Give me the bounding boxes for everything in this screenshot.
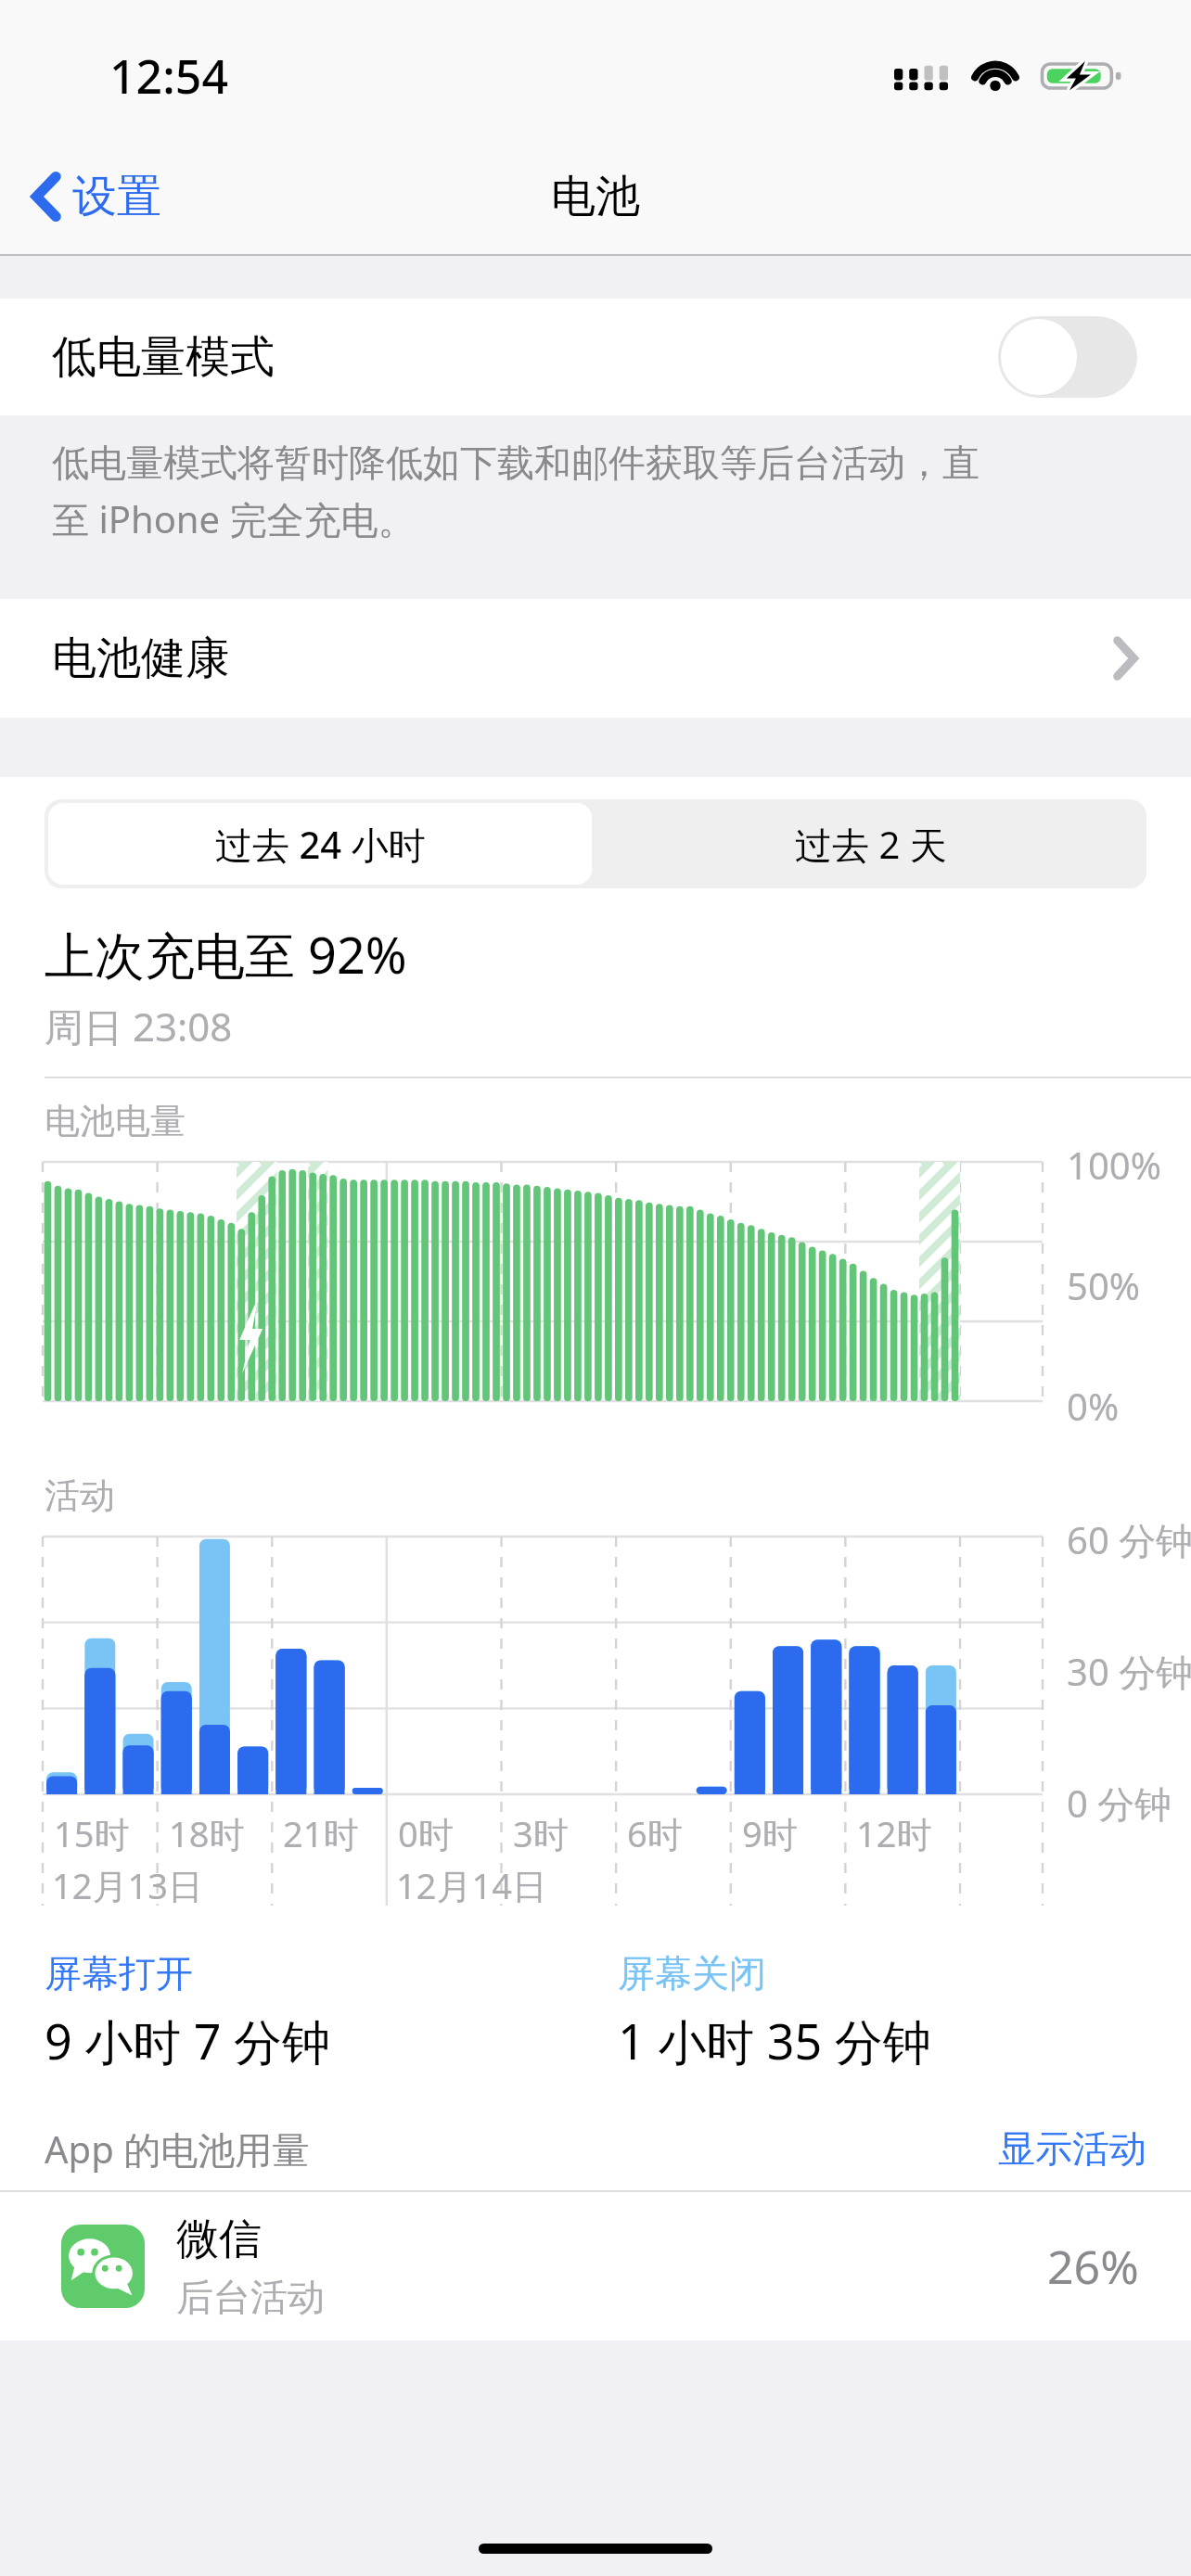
staticText: 6时 xyxy=(627,1809,683,1857)
staticText: 低电量模式将暂时降低如下载和邮件获取等后台活动，直 至 iPhone 完全充电。 xyxy=(52,440,980,544)
staticText: 周日 23:08 xyxy=(45,1000,233,1052)
staticText: 微信 xyxy=(176,2213,262,2266)
button[interactable]: 低电量模式 xyxy=(998,316,1137,398)
button[interactable]: 过去 2 天 xyxy=(595,799,1146,888)
button[interactable]: 过去 24 小时 xyxy=(48,803,592,885)
staticText: 低电量模式 xyxy=(52,329,275,385)
staticText: 屏幕打开 xyxy=(45,1950,193,1996)
button[interactable]: 显示活动 xyxy=(976,2112,1191,2185)
staticText: 9 小时 7 分钟 xyxy=(45,2008,331,2073)
staticText: 21时 xyxy=(283,1809,359,1857)
staticText: 12:54 xyxy=(109,45,228,108)
staticText: 100% xyxy=(1067,1140,1161,1190)
staticText: 1 小时 35 分钟 xyxy=(618,2008,931,2073)
staticText: 后台活动 xyxy=(176,2274,325,2320)
staticText: 电池电量 xyxy=(45,1099,186,1143)
staticText: 过去 24 小时 xyxy=(215,819,426,870)
button[interactable]: 电池健康 xyxy=(0,599,1191,718)
staticText: 设置 xyxy=(72,169,161,224)
staticText: 12月13日 xyxy=(52,1861,203,1909)
staticText: 电池 xyxy=(551,169,640,224)
staticText: 60 分钟 xyxy=(1067,1514,1191,1565)
staticText: 15时 xyxy=(54,1809,130,1857)
staticText: 18时 xyxy=(169,1809,245,1857)
staticText: 30 分钟 xyxy=(1067,1646,1191,1697)
staticText: 0% xyxy=(1067,1381,1120,1431)
staticText: 0 分钟 xyxy=(1067,1778,1172,1829)
staticText: 26% xyxy=(1047,2235,1139,2298)
staticText: 50% xyxy=(1067,1260,1140,1310)
staticText: 过去 2 天 xyxy=(795,819,947,870)
staticText: 12月14日 xyxy=(396,1861,547,1909)
staticText: 显示活动 xyxy=(998,2125,1146,2172)
staticText: 9时 xyxy=(742,1809,798,1857)
button[interactable]: 低电量模式 xyxy=(0,299,1191,415)
staticText: 3时 xyxy=(513,1809,569,1857)
staticText: 0时 xyxy=(398,1809,454,1857)
button[interactable]: 设置 xyxy=(22,158,171,236)
staticText: 上次充电至 92% xyxy=(45,920,407,988)
staticText: 屏幕关闭 xyxy=(618,1950,766,1996)
button[interactable]: 微信 xyxy=(0,2192,1191,2340)
staticText: 电池健康 xyxy=(52,631,230,686)
staticText: 活动 xyxy=(45,1473,115,1518)
staticText: App 的电池用量 xyxy=(45,2123,310,2174)
staticText: 12时 xyxy=(856,1809,932,1857)
